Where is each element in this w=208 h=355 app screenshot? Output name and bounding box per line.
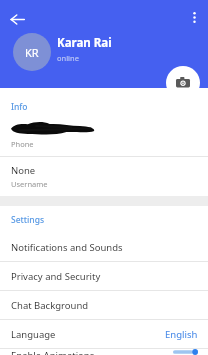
button[interactable]: Notifications and Sounds bbox=[0, 233, 208, 261]
button[interactable]: KR bbox=[13, 33, 51, 71]
staticText: Language bbox=[11, 328, 56, 341]
staticText: Info bbox=[11, 101, 28, 113]
staticText: Notifications and Sounds bbox=[11, 241, 123, 254]
button[interactable]: Enable Animations bbox=[0, 349, 208, 355]
staticText: None bbox=[11, 164, 36, 177]
staticText: Karan Rai bbox=[57, 35, 112, 51]
button[interactable]: Phone bbox=[0, 121, 208, 156]
staticText: KR bbox=[25, 45, 39, 60]
button[interactable]: Language bbox=[0, 320, 208, 348]
button[interactable]: Privacy and Security bbox=[0, 262, 208, 290]
staticText: Settings bbox=[11, 214, 45, 226]
button[interactable]: Chat Background bbox=[0, 291, 208, 319]
button[interactable]: More options bbox=[182, 5, 206, 29]
staticText: Enable Animations bbox=[11, 349, 95, 355]
staticText: English bbox=[165, 328, 198, 341]
staticText: Chat Background bbox=[11, 299, 89, 312]
staticText: online bbox=[57, 53, 79, 63]
staticText: Username bbox=[11, 179, 48, 189]
staticText: Privacy and Security bbox=[11, 270, 101, 283]
button[interactable]: Change photo bbox=[166, 66, 200, 100]
staticText: Phone bbox=[11, 139, 34, 149]
button[interactable]: None bbox=[0, 157, 208, 196]
button[interactable]: Back bbox=[4, 6, 30, 32]
